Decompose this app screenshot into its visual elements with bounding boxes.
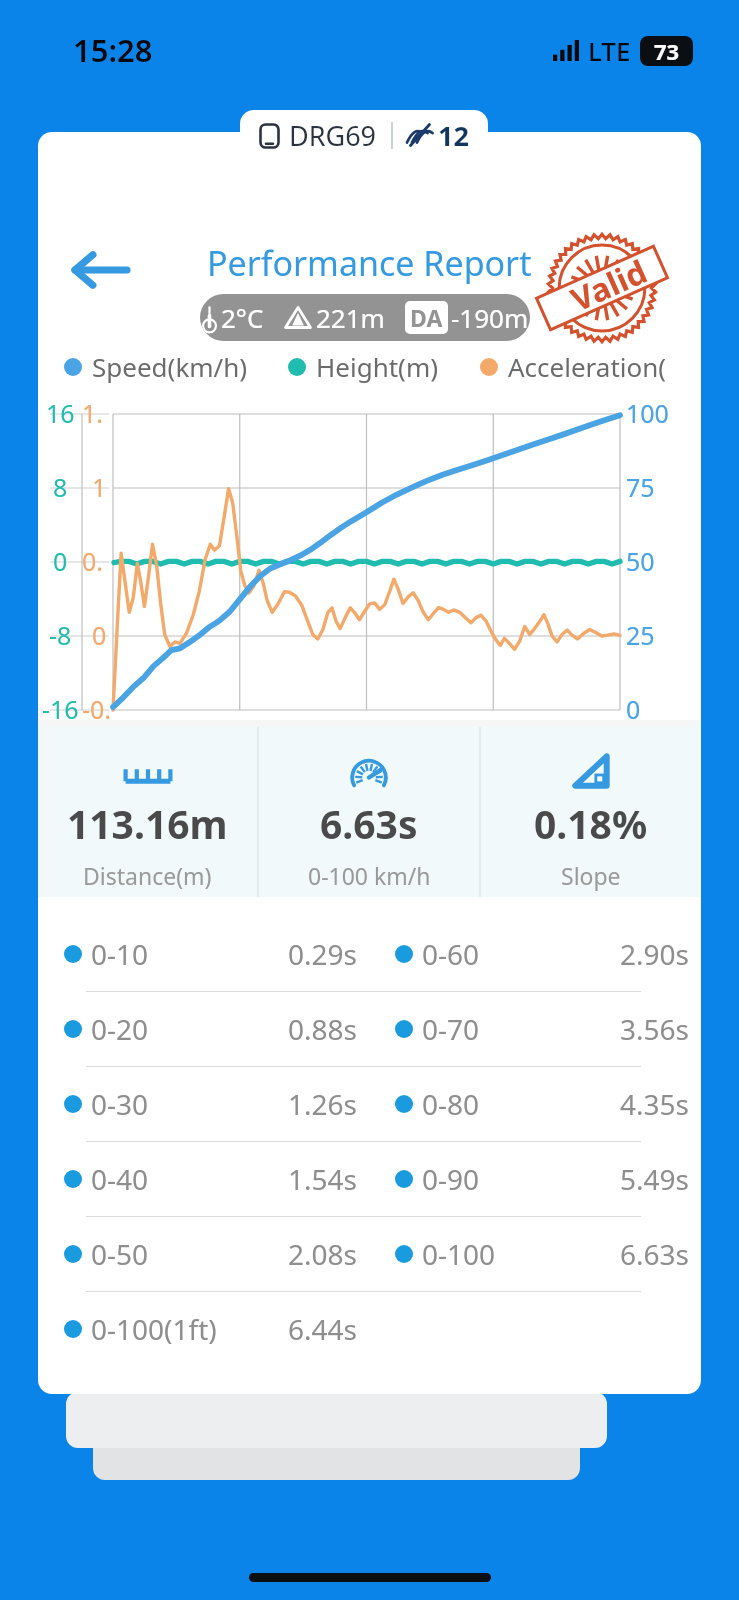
staticText: 0.5 — [82, 544, 116, 578]
staticText: 5.49s — [569, 1160, 689, 1198]
staticText: 6.44s — [237, 1310, 357, 1348]
staticText: 25 — [626, 618, 655, 652]
staticText: 1.26s — [237, 1085, 357, 1123]
staticText: 0-60 — [422, 935, 480, 973]
staticText: 0.18% — [534, 797, 648, 850]
staticText: -0.5 — [82, 692, 116, 726]
staticText: 0 — [626, 692, 641, 726]
staticText: 0 — [92, 618, 107, 652]
staticText: 0-100 — [422, 1235, 496, 1273]
staticText: 6.63s — [569, 1235, 689, 1273]
staticText: 6.63s — [320, 797, 418, 850]
button[interactable]: 0-40 — [38, 1142, 701, 1216]
staticText: Valid — [564, 249, 654, 321]
button[interactable]: 0-100(1ft) — [38, 1292, 701, 1366]
staticText: 12 — [438, 117, 469, 154]
staticText: 4.35s — [569, 1085, 689, 1123]
staticText: 0-20 — [91, 1010, 149, 1048]
staticText: 2°C — [221, 300, 264, 335]
staticText: DA — [410, 302, 443, 333]
staticText: 16 — [46, 396, 75, 430]
staticText: 221m — [316, 300, 385, 335]
button[interactable]: 113.16m — [38, 727, 257, 897]
button[interactable]: 0-10 — [38, 917, 701, 991]
staticText: Distance(m) — [83, 860, 212, 891]
button[interactable]: Back — [56, 238, 146, 302]
staticText: 1.54s — [237, 1160, 357, 1198]
staticText: 73 — [654, 36, 680, 66]
staticText: 0-10 — [91, 935, 149, 973]
staticText: 0 — [53, 544, 68, 578]
staticText: 0-80 — [422, 1085, 480, 1123]
staticText: 0-30 — [91, 1085, 149, 1123]
staticText: 113.16m — [67, 797, 228, 850]
button[interactable]: 6.63s — [259, 727, 479, 897]
staticText: Speed(km/h) — [92, 349, 248, 384]
button[interactable]: DRG69 — [240, 110, 488, 160]
staticText: 8 — [53, 470, 68, 504]
staticText: 0-70 — [422, 1010, 480, 1048]
staticText: Acceleration(g) — [508, 349, 675, 384]
staticText: 15:28 — [73, 29, 153, 71]
button[interactable]: 0-50 — [38, 1217, 701, 1291]
staticText: -190m — [451, 300, 529, 335]
staticText: 0.29s — [237, 935, 357, 973]
staticText: -8 — [49, 618, 72, 652]
staticText: 50 — [626, 544, 655, 578]
button[interactable]: 0.18% — [481, 727, 701, 897]
staticText: Height(m) — [316, 349, 438, 384]
staticText: 2.08s — [237, 1235, 357, 1273]
staticText: -16 — [42, 692, 79, 726]
staticText: 3.56s — [569, 1010, 689, 1048]
staticText: 1 — [92, 470, 107, 504]
button[interactable]: 0-20 — [38, 992, 701, 1066]
staticText: 100 — [626, 396, 669, 430]
staticText: DRG69 — [289, 117, 377, 154]
staticText: Slope — [561, 860, 621, 891]
button[interactable]: 0-30 — [38, 1067, 701, 1141]
staticText: 2.90s — [569, 935, 689, 973]
staticText: 75 — [626, 470, 655, 504]
staticText: 0-100(1ft) — [91, 1310, 217, 1348]
staticText: 0-90 — [422, 1160, 480, 1198]
staticText: 0-100 km/h — [308, 860, 431, 891]
staticText: 1.5 — [82, 396, 116, 430]
staticText: 0.88s — [237, 1010, 357, 1048]
staticText: Performance Report — [207, 240, 532, 286]
staticText: 0-50 — [91, 1235, 149, 1273]
staticText: LTE — [588, 33, 631, 68]
staticText: 0-40 — [91, 1160, 149, 1198]
